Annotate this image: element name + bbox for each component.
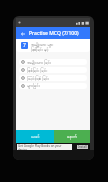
staticText: အမျိုးသား များ ဖြစ်ခြင်း နှင့် အမျိုး သာ… bbox=[31, 42, 56, 52]
staticText: များခြင်း bbox=[27, 83, 40, 89]
button[interactable]: Install bbox=[77, 145, 88, 149]
button[interactable]: များခြင်း bbox=[19, 83, 87, 89]
staticText: သြင်းဖြစ် ခြင်း bbox=[27, 75, 50, 81]
button[interactable]: အမျိုးသား ခြင်း bbox=[19, 59, 87, 65]
staticText: ဖြစ်ခြင်း ခြင်း bbox=[27, 67, 48, 73]
staticText: ယခင် bbox=[31, 134, 40, 140]
staticText: နောက် bbox=[67, 134, 77, 140]
staticText: အမျိုးသား ခြင်း bbox=[27, 59, 52, 65]
staticText: Get Google Play Books on your device bbox=[18, 144, 71, 150]
button[interactable]: Back bbox=[18, 29, 27, 38]
button[interactable]: နောက် bbox=[54, 130, 90, 143]
button[interactable]: ဖြစ်ခြင်း ခြင်း bbox=[19, 67, 87, 73]
button[interactable]: သြင်းဖြစ် ခြင်း bbox=[19, 75, 87, 81]
staticText: Install bbox=[78, 145, 87, 149]
button[interactable]: ယခင် bbox=[16, 130, 54, 143]
staticText: 7 bbox=[23, 42, 26, 49]
staticText: Practise MCQ (7/100) bbox=[29, 30, 79, 37]
